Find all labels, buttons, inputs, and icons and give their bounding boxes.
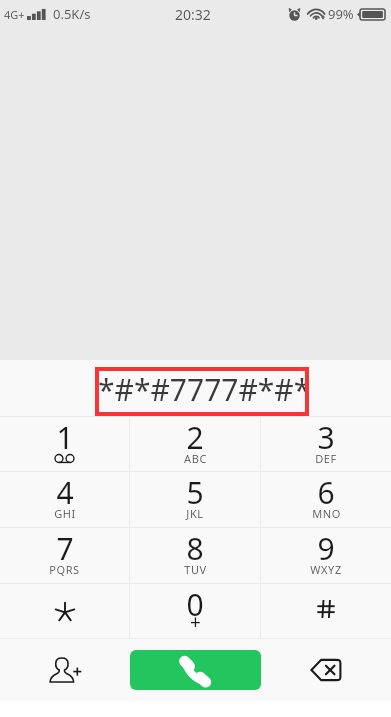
button[interactable]: Call — [130, 650, 261, 690]
staticText: 0 — [186, 584, 204, 625]
staticText: 4 — [56, 472, 74, 513]
staticText: WXYZ — [310, 562, 342, 577]
button[interactable]: 1 — [0, 417, 129, 471]
button[interactable] — [261, 584, 391, 638]
button[interactable]: 6 — [261, 472, 391, 527]
staticText: TUV — [184, 562, 207, 577]
staticText: PQRS — [49, 562, 80, 577]
button[interactable]: 4 — [0, 472, 129, 527]
button[interactable]: Add contact — [0, 639, 130, 701]
staticText: GHI — [54, 506, 76, 521]
staticText: 2 — [186, 417, 204, 458]
staticText: *#*#7777#*#* — [98, 369, 311, 410]
staticText: 99% — [328, 5, 354, 23]
button[interactable]: 0 — [130, 584, 260, 638]
staticText: 3 — [317, 417, 335, 458]
staticText: MNO — [312, 506, 341, 521]
staticText: 4G+ — [4, 7, 25, 22]
button[interactable] — [0, 584, 129, 638]
button[interactable]: 9 — [261, 528, 391, 583]
button[interactable]: 8 — [130, 528, 260, 583]
staticText: 9 — [317, 528, 335, 569]
staticText: DEF — [315, 451, 337, 466]
button[interactable]: 7 — [0, 528, 129, 583]
button[interactable]: 3 — [261, 417, 391, 471]
staticText: JKL — [186, 506, 204, 521]
staticText: 7 — [56, 528, 74, 569]
button[interactable]: 5 — [130, 472, 260, 527]
button[interactable]: Backspace — [261, 639, 391, 701]
staticText: 1 — [56, 417, 74, 458]
button[interactable]: 2 — [130, 417, 260, 471]
staticText: 5 — [186, 472, 204, 513]
staticText: 20:32 — [175, 5, 211, 24]
staticText: ABC — [184, 451, 207, 466]
staticText: 6 — [317, 472, 335, 513]
staticText: + — [190, 609, 201, 635]
staticText: 8 — [186, 528, 204, 569]
staticText: 0.5K/s — [53, 5, 91, 23]
